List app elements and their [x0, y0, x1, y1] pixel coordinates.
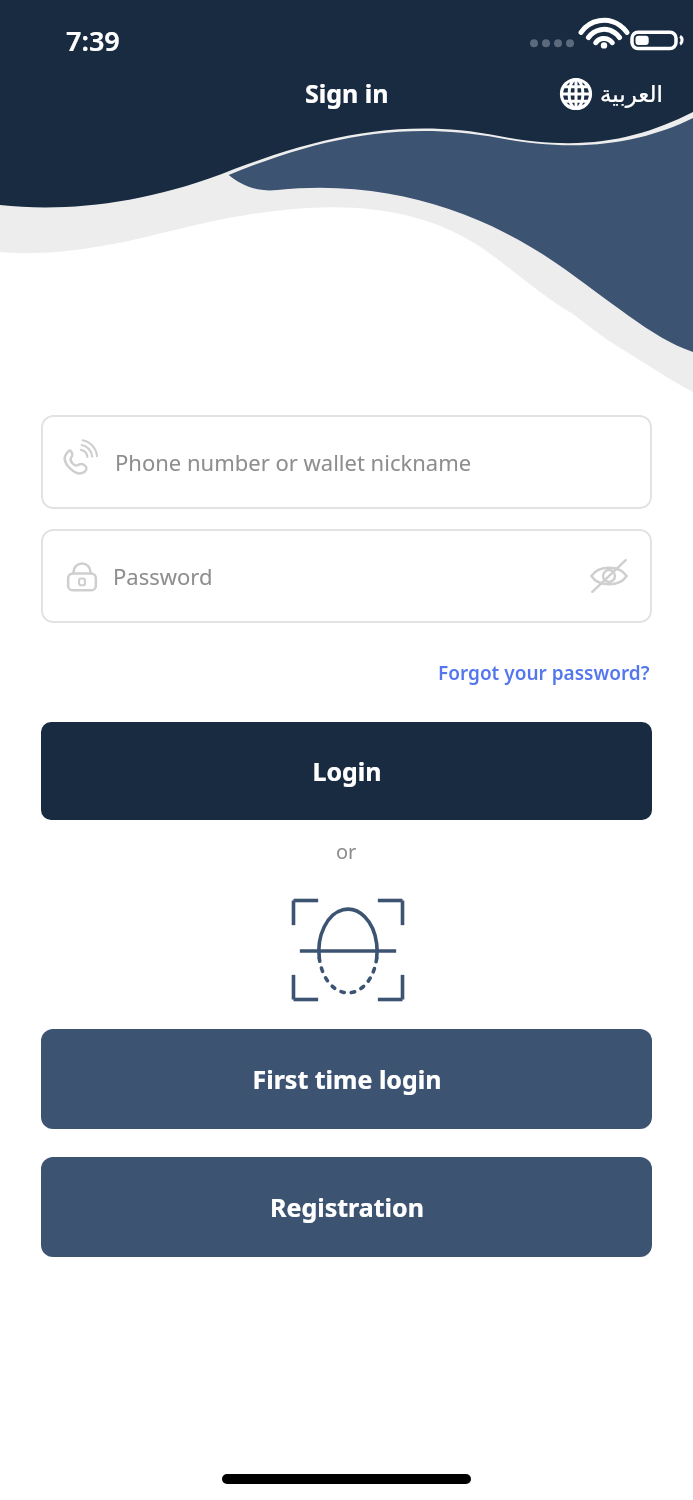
button[interactable]: Forgot your password?: [436, 656, 652, 690]
button[interactable]: First time login: [41, 1029, 652, 1129]
staticText: Registration: [270, 1190, 424, 1224]
button[interactable]: العربية: [556, 74, 667, 114]
staticText: Sign in: [305, 76, 389, 110]
staticText: Password: [113, 561, 213, 591]
button[interactable]: Show password: [586, 553, 632, 599]
button[interactable]: Login: [41, 722, 652, 820]
staticText: 7:39: [66, 22, 120, 59]
button[interactable]: Phone number or wallet nickname: [41, 415, 652, 509]
button[interactable]: Registration: [41, 1157, 652, 1257]
staticText: or: [336, 838, 357, 865]
button[interactable]: Password: [41, 529, 652, 623]
staticText: العربية: [600, 81, 663, 108]
staticText: Forgot your password?: [438, 660, 650, 686]
staticText: First time login: [252, 1062, 442, 1096]
staticText: Login: [312, 754, 382, 788]
staticText: Phone number or wallet nickname: [115, 447, 472, 477]
button[interactable]: Face login: [288, 895, 408, 1005]
